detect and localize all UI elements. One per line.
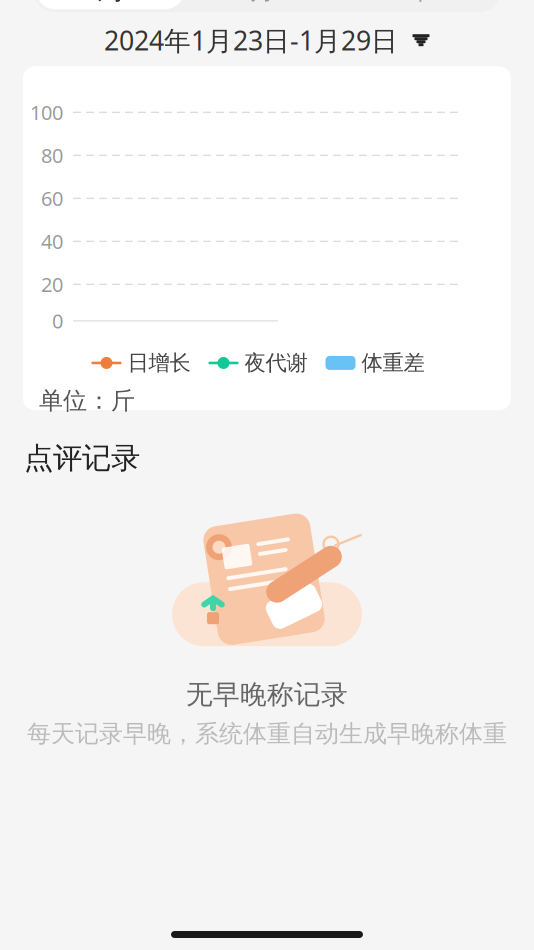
staticText: 体重差 [361,350,424,376]
staticText: 日增长 [127,350,190,376]
staticText: 夜代谢 [244,350,307,376]
staticText: 40 [41,228,63,255]
button[interactable]: 月 [184,0,341,9]
staticText: 20 [41,271,63,298]
staticText: 年 [407,0,432,6]
staticText: 周 [97,0,122,6]
staticText: 80 [41,142,63,169]
staticText: 0 [52,308,63,334]
staticText: 60 [41,185,63,212]
staticText: 2024年1月23日-1月29日 [104,22,398,58]
button[interactable]: 周 [36,0,184,9]
staticText: 无早晚称记录 [186,678,348,711]
button[interactable]: 年 [341,0,498,9]
staticText: 每天记录早晚，系统体重自动生成早晚称体重 [27,719,507,748]
staticText: 单位：斤 [39,386,135,416]
button[interactable]: 2024年1月23日-1月29日 [104,22,430,58]
staticText: 月 [250,0,275,6]
staticText: 点评记录 [24,440,140,476]
staticText: 100 [30,99,63,126]
